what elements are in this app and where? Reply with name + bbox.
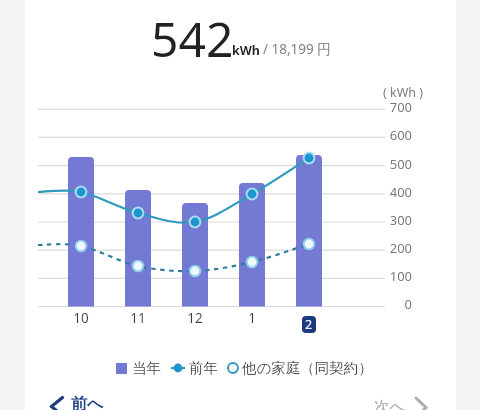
staticText: 次へ (374, 397, 406, 410)
staticText: 400 (386, 183, 412, 201)
staticText: 600 (386, 126, 412, 144)
staticText: kWh (232, 42, 260, 59)
staticText: 他の家庭（同契約） (242, 359, 373, 377)
staticText: 700 (386, 98, 412, 116)
staticText: 200 (386, 239, 412, 257)
staticText: 0 (386, 295, 412, 313)
staticText: ( kWh ) (383, 84, 424, 101)
staticText: / 18,199 円 (263, 40, 331, 58)
staticText: 542 (151, 6, 234, 71)
staticText: 前年 (189, 359, 218, 377)
staticText: 500 (386, 155, 412, 173)
staticText: 300 (386, 211, 412, 229)
staticText: 前へ (71, 394, 104, 410)
staticText: 11 (123, 309, 153, 327)
staticText: 当年 (132, 359, 161, 377)
staticText: 10 (66, 309, 96, 327)
staticText: 1 (237, 309, 267, 327)
button[interactable]: 2 (302, 316, 316, 333)
staticText: 2 (305, 316, 313, 333)
staticText: 12 (180, 309, 210, 327)
staticText: 100 (386, 267, 412, 285)
button[interactable]: 前へ (44, 388, 110, 410)
button[interactable]: 次へ (368, 390, 430, 410)
